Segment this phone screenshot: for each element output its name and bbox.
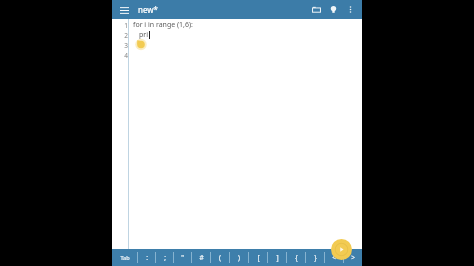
button[interactable]: } — [306, 249, 324, 266]
staticText: 4 — [124, 51, 128, 60]
button[interactable]: < — [325, 249, 343, 266]
staticText: : — [146, 253, 148, 262]
staticText: # — [199, 253, 204, 262]
staticText: > — [351, 253, 355, 262]
staticText: new* — [138, 4, 158, 15]
button[interactable]: ] — [268, 249, 286, 266]
staticText: for i in range (1,6): — [133, 20, 193, 30]
button[interactable]: ) — [230, 249, 248, 266]
staticText: ( — [219, 253, 221, 262]
button[interactable]: Tab — [112, 249, 137, 266]
button[interactable]: { — [287, 249, 305, 266]
button[interactable]: [ — [249, 249, 267, 266]
button[interactable]: > — [344, 249, 362, 266]
staticText: { — [295, 253, 298, 262]
staticText: 2 — [124, 31, 128, 40]
staticText: pri — [139, 30, 149, 40]
staticText: } — [314, 253, 317, 262]
button[interactable]: : — [138, 249, 155, 266]
button[interactable]: ; — [156, 249, 173, 266]
staticText: Tab — [120, 254, 130, 261]
staticText: ; — [164, 253, 166, 262]
staticText: " — [181, 253, 184, 262]
button[interactable]: 1 — [112, 19, 362, 249]
button[interactable]: Run — [331, 239, 352, 260]
button[interactable]: # — [192, 249, 210, 266]
staticText: < — [332, 253, 336, 262]
button[interactable]: Hints — [325, 1, 342, 18]
button[interactable]: More options — [342, 1, 359, 18]
staticText: ) — [238, 253, 240, 262]
button[interactable]: " — [174, 249, 191, 266]
staticText: 1 — [124, 21, 128, 30]
button[interactable]: Open file — [308, 1, 325, 18]
staticText: [ — [257, 253, 260, 262]
staticText: 3 — [124, 41, 128, 50]
button[interactable]: ( — [211, 249, 229, 266]
staticText: ] — [276, 253, 279, 262]
button[interactable]: Open navigation drawer — [116, 2, 132, 18]
